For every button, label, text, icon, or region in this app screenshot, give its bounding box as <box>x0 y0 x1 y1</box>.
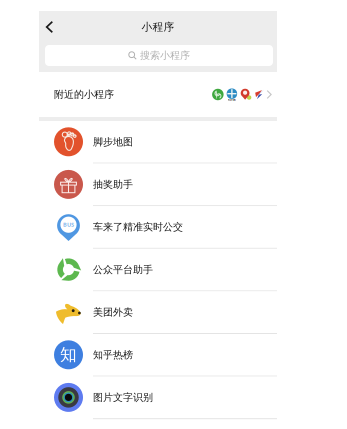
staticText: 公众平台助手 <box>93 263 153 276</box>
staticText: 知乎热榜 <box>93 348 133 361</box>
button[interactable]: 脚步地图 <box>39 121 277 164</box>
staticText: 脚步地图 <box>93 135 133 148</box>
staticText: 小程序 <box>141 20 174 34</box>
staticText: 抽奖助手 <box>93 178 133 191</box>
staticText: RIVER <box>228 98 236 101</box>
button[interactable]: 图片文字识别 <box>39 377 277 419</box>
button[interactable]: 抽奖助手 <box>39 164 277 206</box>
staticText: 搜索小程序 <box>140 49 190 62</box>
button[interactable]: 公众平台助手 <box>39 249 277 291</box>
staticText: 知 <box>60 344 77 365</box>
staticText: BUS <box>63 221 74 228</box>
staticText: 图片文字识别 <box>93 391 153 404</box>
staticText: 美团外卖 <box>93 306 133 318</box>
button[interactable]: 美团外卖 <box>39 291 277 334</box>
button[interactable]: Back <box>37 14 61 40</box>
button[interactable]: BUS <box>39 206 277 249</box>
button[interactable]: 知 <box>39 334 277 377</box>
button[interactable]: 搜索小程序 <box>45 45 273 66</box>
staticText: 车来了精准实时公交 <box>93 221 183 233</box>
button[interactable]: 附近的小程序 <box>39 72 277 117</box>
staticText: 附近的小程序 <box>54 88 114 101</box>
